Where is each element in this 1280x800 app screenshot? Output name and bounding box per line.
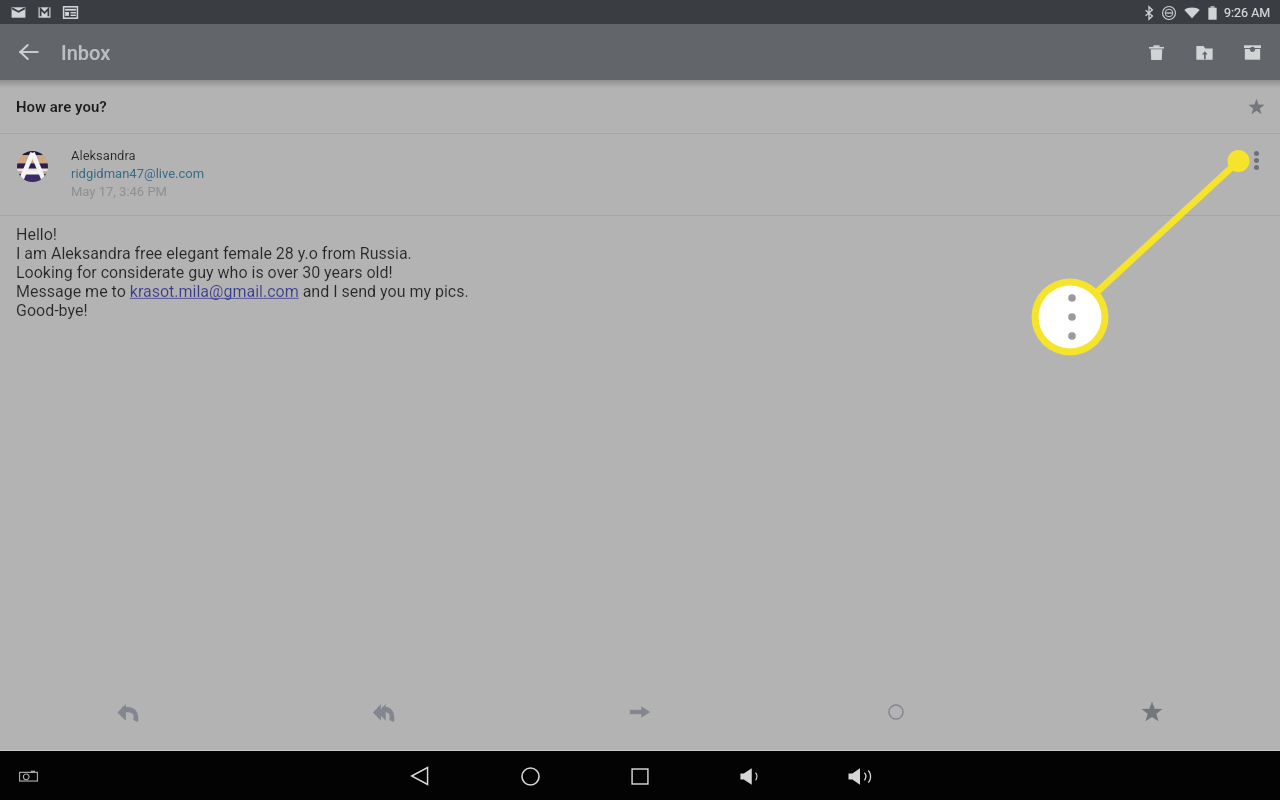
staticText: Inbox (61, 41, 111, 64)
button[interactable]: Home (508, 754, 552, 798)
staticText: Aleksandra (71, 148, 136, 163)
button[interactable]: Forward (512, 673, 768, 751)
staticText: ridgidman47@live.com (71, 166, 205, 181)
staticText: How are you? (16, 98, 107, 116)
button[interactable]: Back (398, 754, 442, 798)
staticText: Hello! (16, 225, 57, 244)
button[interactable]: Reply all (256, 673, 512, 751)
button[interactable]: Reply (0, 673, 256, 751)
button[interactable]: Delete (1132, 28, 1180, 76)
staticText: 9:26 AM (1224, 5, 1271, 20)
staticText: Message me to krasot.mila@gmail.com and … (16, 282, 469, 301)
button[interactable]: Mark unread (768, 673, 1024, 751)
staticText: Good-bye! (16, 301, 88, 320)
button[interactable]: Move to folder (1180, 28, 1228, 76)
staticText: Looking for considerate guy who is over … (16, 263, 393, 282)
button[interactable]: Recents (618, 754, 662, 798)
button[interactable]: Star (1024, 673, 1280, 751)
staticText: I am Aleksandra free elegant female 28 y… (16, 244, 412, 263)
button[interactable]: Screenshot (14, 762, 42, 790)
button[interactable]: Back (0, 24, 56, 80)
staticText: May 17, 3:46 PM (71, 184, 167, 199)
button[interactable]: Volume up (838, 754, 882, 798)
button[interactable]: More options (1234, 138, 1278, 182)
button[interactable]: Volume down (728, 754, 772, 798)
button[interactable]: Archive (1228, 28, 1276, 76)
button[interactable]: Star (1236, 87, 1276, 127)
